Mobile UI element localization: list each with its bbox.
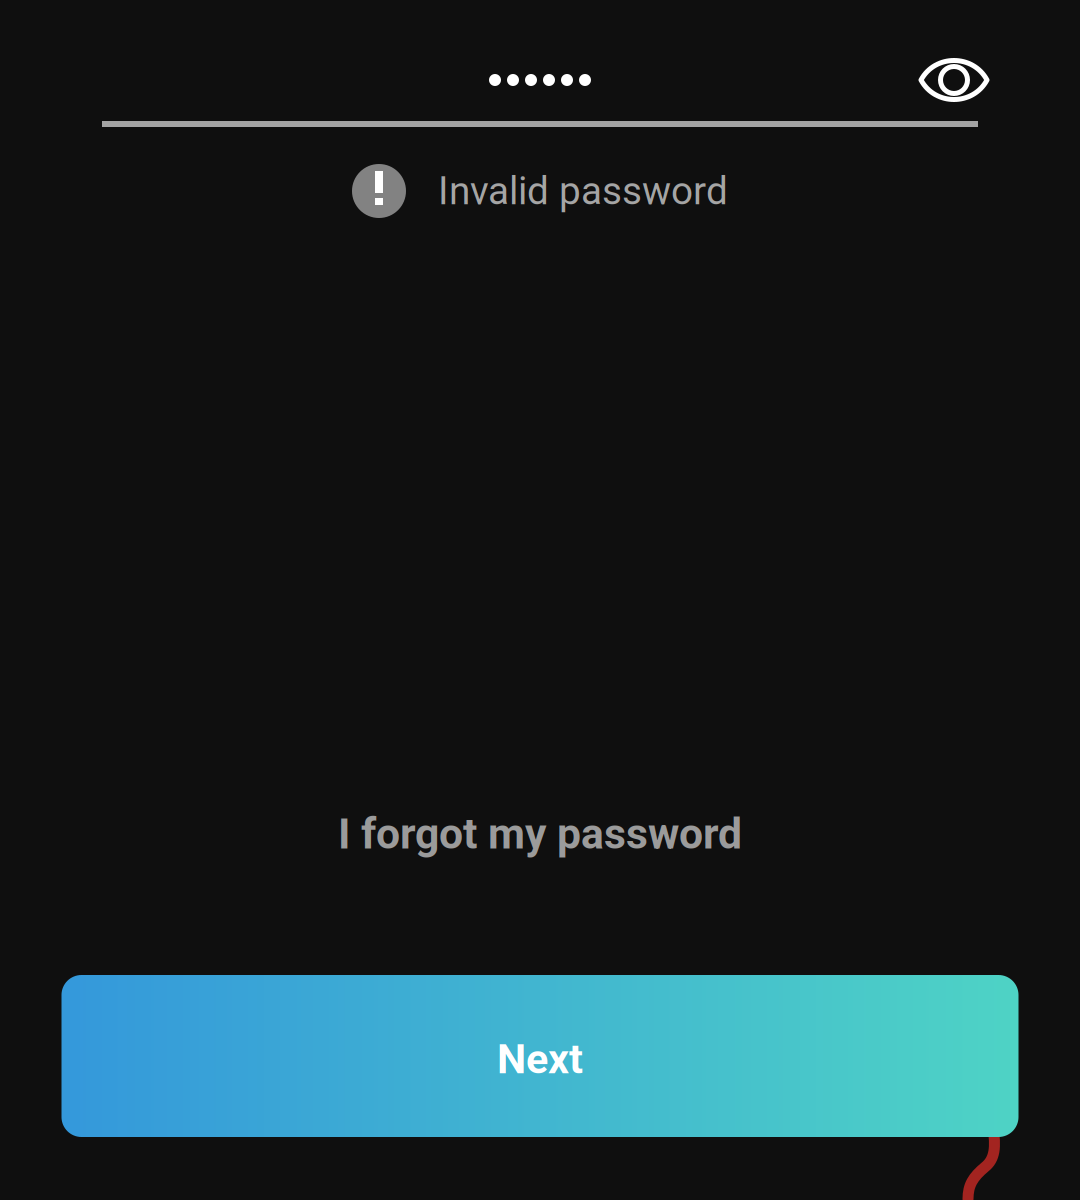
- button[interactable]: I forgot my password: [314, 795, 766, 873]
- button[interactable]: Show password: [898, 49, 1041, 111]
- staticText: Invalid password: [438, 168, 728, 214]
- button[interactable]: Next: [61, 975, 1018, 1137]
- staticText: Next: [497, 1035, 583, 1083]
- staticText: I forgot my password: [338, 809, 742, 859]
